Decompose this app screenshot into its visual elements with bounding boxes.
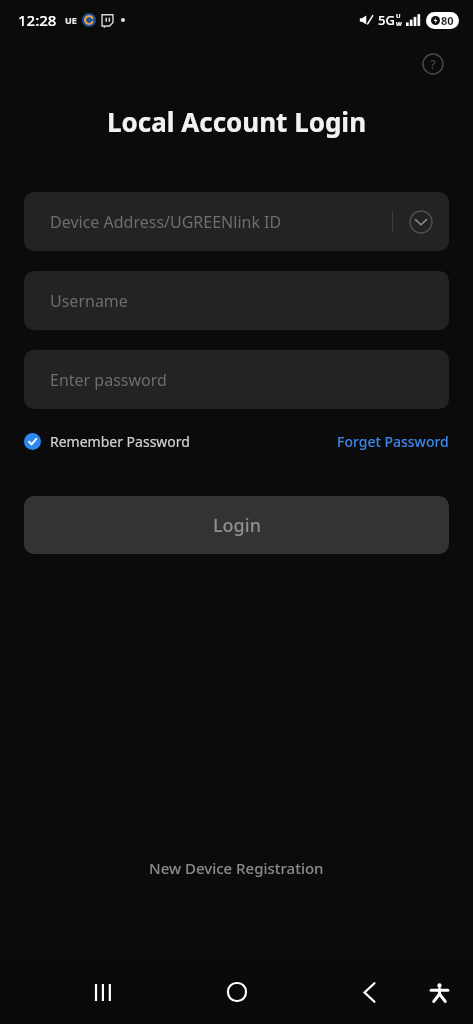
staticText: Login [213, 513, 261, 538]
button[interactable]: Username [24, 271, 449, 330]
staticText: Forget Password [337, 432, 449, 451]
button[interactable]: New Device Registration [0, 848, 473, 888]
button[interactable]: Login [24, 496, 449, 554]
button[interactable]: Forget Password [337, 432, 449, 451]
button[interactable]: Remember Password [24, 432, 194, 451]
button[interactable]: Recent apps [82, 970, 126, 1014]
staticText: Enter password [50, 369, 167, 391]
button[interactable]: Help [417, 48, 449, 80]
button[interactable]: Show device list [393, 192, 449, 251]
button[interactable]: Home [215, 970, 259, 1014]
staticText: New Device Registration [149, 858, 324, 878]
staticText: ? [430, 55, 436, 73]
staticText: Username [50, 290, 128, 312]
staticText: 5G [378, 11, 395, 29]
staticText: Remember Password [50, 432, 190, 451]
staticText: U [396, 12, 401, 20]
button[interactable]: Back [347, 970, 391, 1014]
staticText: UE [65, 14, 77, 26]
button[interactable]: Enter password [24, 350, 449, 409]
button[interactable]: Accessibility [421, 974, 457, 1010]
staticText: 12:28 [18, 10, 57, 30]
staticText: W [396, 20, 402, 28]
staticText: 80 [441, 13, 454, 28]
staticText: Local Account Login [0, 104, 473, 139]
staticText: Device Address/UGREENlink ID [50, 211, 392, 233]
button[interactable]: Device Address/UGREENlink ID [24, 192, 449, 251]
